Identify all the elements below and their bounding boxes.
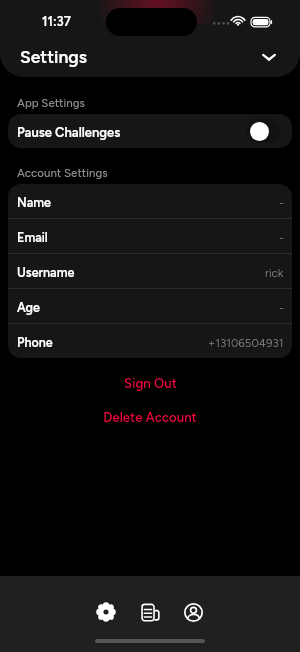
staticText: Name	[17, 195, 51, 210]
button[interactable]: Delete Account	[0, 408, 300, 426]
staticText: Phone	[17, 335, 53, 350]
staticText: -	[279, 231, 284, 245]
button[interactable]: Feed	[133, 595, 167, 629]
button[interactable]: Phone	[8, 324, 292, 358]
staticText: Age	[17, 300, 40, 315]
staticText: Sign Out	[124, 375, 177, 391]
button[interactable]: Username	[8, 254, 292, 288]
button[interactable]: Profile	[176, 595, 210, 629]
staticText: rick	[265, 266, 284, 280]
staticText: Username	[17, 265, 75, 280]
button[interactable]: Expand settings	[254, 42, 284, 72]
button[interactable]: Pause Challenges	[8, 114, 292, 148]
staticText: Email	[17, 230, 48, 245]
staticText: Delete Account	[103, 409, 197, 425]
button[interactable]: Settings	[89, 595, 123, 629]
button[interactable]: Email	[8, 219, 292, 253]
staticText: +13106504931	[208, 336, 284, 350]
button[interactable]: Name	[8, 184, 292, 218]
staticText: Settings	[20, 46, 87, 67]
staticText: -	[279, 196, 284, 210]
staticText: -	[279, 301, 284, 315]
staticText: Pause Challenges	[17, 125, 121, 141]
staticText: Account Settings	[17, 166, 108, 180]
button[interactable]: Settings	[20, 46, 87, 67]
staticText: App Settings	[17, 96, 85, 110]
button[interactable]: Age	[8, 289, 292, 323]
button[interactable]: Sign Out	[0, 374, 300, 392]
staticText: 11:37	[42, 14, 71, 30]
